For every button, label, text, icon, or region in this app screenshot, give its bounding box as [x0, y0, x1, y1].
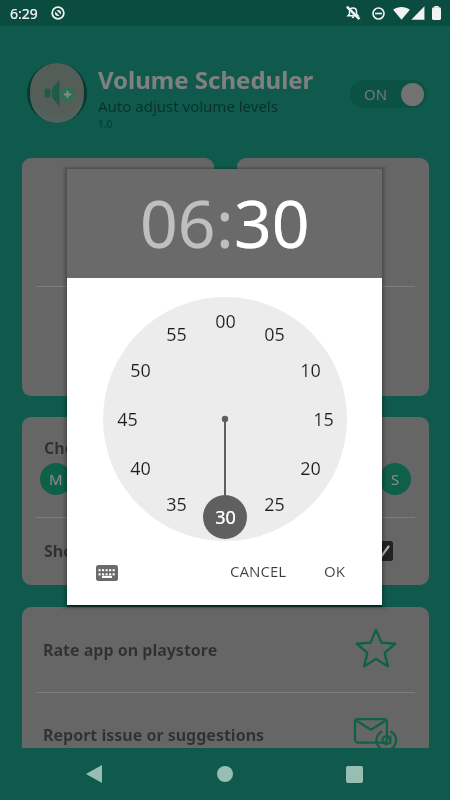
staticText: Show notification: [44, 540, 184, 562]
button[interactable]: S: [379, 463, 411, 495]
staticText: Choose days: [44, 437, 144, 459]
staticText: 05: [264, 322, 285, 346]
button[interactable]: [22, 158, 214, 396]
staticText: 6:29: [10, 4, 38, 23]
staticText: Rate app on playstore: [43, 639, 218, 661]
staticText: 35: [166, 492, 187, 516]
staticText: CANCEL: [230, 561, 287, 581]
staticText: M: [49, 469, 63, 489]
button[interactable]: [237, 158, 429, 396]
staticText: ON: [364, 84, 388, 104]
button[interactable]: Report issue or suggestions: [22, 693, 429, 777]
staticText: 10: [300, 358, 321, 382]
staticText: 45: [117, 407, 138, 431]
button[interactable]: Rate app on playstore: [22, 607, 429, 692]
button[interactable]: S: [323, 463, 355, 495]
staticText: 55: [166, 322, 187, 346]
staticText: 15: [313, 407, 334, 431]
button[interactable]: Back: [70, 750, 118, 798]
button[interactable]: Home: [201, 750, 249, 798]
button[interactable]: Recents: [330, 750, 378, 798]
button[interactable]: 06: [140, 177, 216, 267]
staticText: :: [216, 177, 234, 267]
staticText: Report issue or suggestions: [43, 724, 265, 746]
staticText: OK: [324, 561, 346, 581]
button[interactable]: M: [40, 463, 72, 495]
button[interactable]: Show notification: [22, 517, 429, 585]
button[interactable]: ON: [350, 80, 427, 108]
staticText: 30: [215, 505, 236, 529]
button[interactable]: 30: [234, 177, 310, 267]
staticText: T: [109, 469, 118, 489]
staticText: T: [222, 469, 231, 489]
staticText: Auto adjust volume levels: [98, 96, 278, 116]
staticText: 50: [130, 358, 151, 382]
staticText: Volume Scheduler: [98, 63, 314, 96]
staticText: 1.0: [98, 117, 113, 131]
staticText: 25: [264, 492, 285, 516]
staticText: 00: [215, 309, 236, 333]
button[interactable]: T: [210, 463, 242, 495]
button[interactable]: T: [97, 463, 129, 495]
staticText: 40: [130, 456, 151, 480]
staticText: S: [391, 469, 400, 489]
button[interactable]: Switch to keyboard input: [87, 553, 127, 593]
button[interactable]: OK: [312, 553, 358, 589]
button[interactable]: CANCEL: [218, 553, 299, 589]
staticText: 20: [300, 456, 321, 480]
